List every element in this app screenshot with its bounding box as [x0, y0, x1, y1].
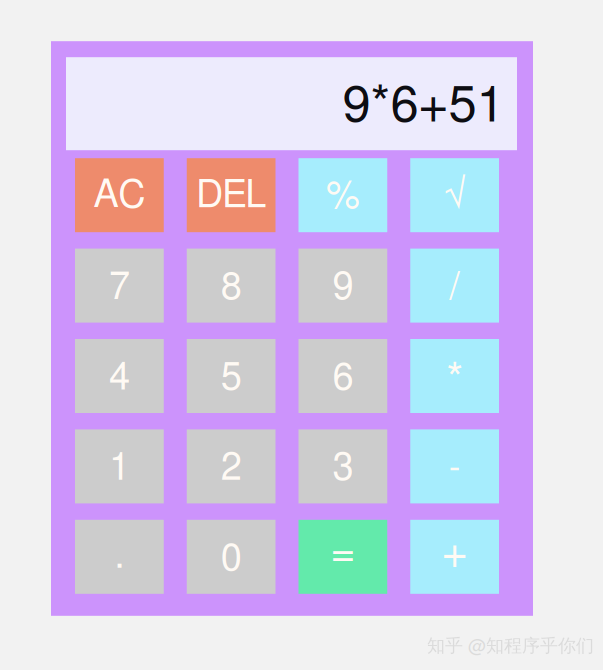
button[interactable]: 2	[187, 429, 276, 503]
staticText: +	[442, 532, 468, 576]
staticText: √	[445, 172, 464, 210]
staticText: 1	[109, 449, 130, 487]
staticText: 3	[332, 449, 353, 487]
button[interactable]: 9	[298, 249, 387, 323]
button[interactable]: 0	[187, 520, 276, 594]
button[interactable]: 5	[187, 339, 276, 413]
staticText: 7	[109, 269, 130, 307]
button[interactable]: DEL	[187, 158, 276, 232]
button[interactable]: 8	[187, 249, 276, 323]
staticText: *	[446, 358, 463, 402]
staticText: 0	[221, 540, 242, 578]
button[interactable]: =	[298, 520, 387, 594]
staticText: 2	[221, 449, 242, 487]
button[interactable]: %	[298, 158, 387, 232]
button[interactable]: /	[410, 249, 499, 323]
button[interactable]: AC	[75, 158, 164, 232]
staticText: AC	[93, 176, 145, 214]
staticText: DEL	[196, 177, 266, 215]
button[interactable]: 3	[298, 429, 387, 503]
staticText: 5	[221, 359, 242, 397]
button[interactable]: √	[410, 158, 499, 232]
staticText: 8	[221, 269, 242, 307]
button[interactable]: 6	[298, 339, 387, 413]
button[interactable]: 4	[75, 339, 164, 413]
staticText: 9	[332, 269, 353, 307]
button[interactable]: 7	[75, 249, 164, 323]
button[interactable]: +	[410, 520, 499, 594]
staticText: =	[331, 533, 355, 574]
staticText: -	[449, 451, 461, 485]
button[interactable]: -	[410, 429, 499, 503]
staticText: 6	[332, 359, 353, 397]
button[interactable]: 1	[75, 429, 164, 503]
staticText: /	[449, 269, 460, 307]
button[interactable]: *	[410, 339, 499, 413]
staticText: .	[114, 537, 124, 575]
staticText: %	[326, 178, 360, 216]
staticText: 9*6+51	[342, 81, 504, 132]
staticText: 4	[109, 359, 130, 397]
staticText: 知乎 @知程序乎你们	[427, 634, 594, 657]
